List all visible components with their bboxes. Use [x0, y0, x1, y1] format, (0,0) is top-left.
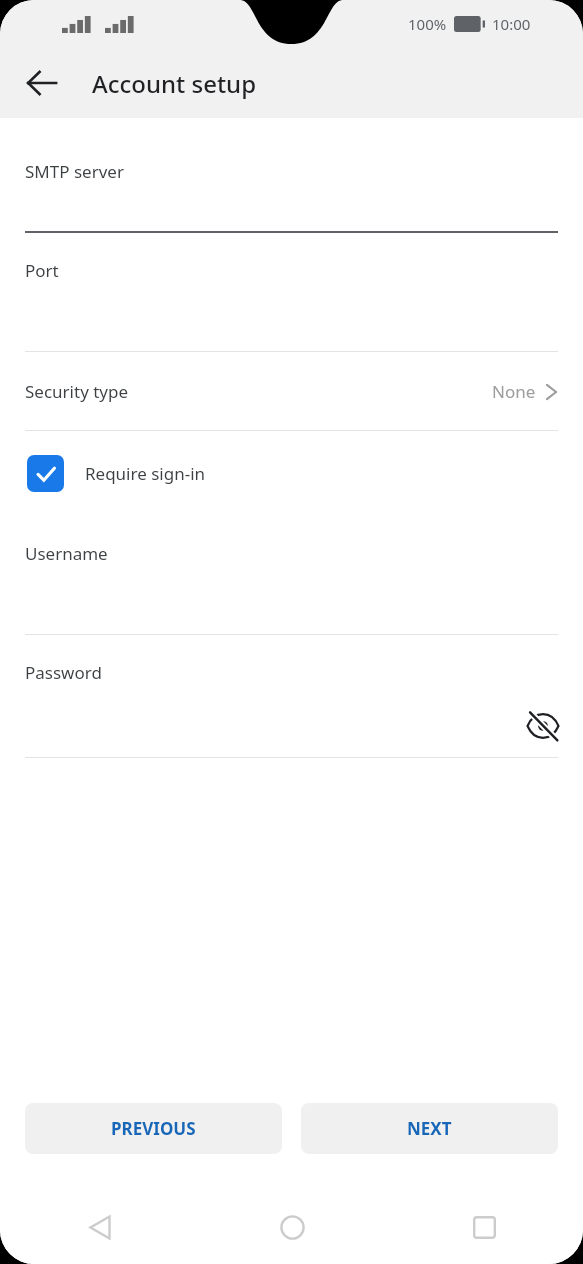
button[interactable]: Show password: [519, 702, 567, 750]
staticText: Account setup: [92, 67, 257, 100]
staticText: SMTP server: [25, 160, 124, 183]
staticText: PREVIOUS: [111, 1117, 196, 1140]
staticText: None: [492, 380, 536, 403]
staticText: Security type: [25, 380, 129, 403]
button[interactable]: Port: [0, 233, 583, 352]
staticText: 10:00: [492, 14, 531, 34]
button[interactable]: Home: [266, 1201, 318, 1253]
button[interactable]: Back: [74, 1201, 126, 1253]
button[interactable]: SMTP server: [0, 136, 583, 233]
staticText: NEXT: [407, 1117, 452, 1140]
button[interactable]: PREVIOUS: [25, 1103, 282, 1154]
staticText: 100%: [408, 14, 447, 34]
staticText: Require sign-in: [85, 462, 206, 485]
button[interactable]: Security type: [0, 352, 583, 431]
staticText: Port: [25, 259, 59, 282]
button[interactable]: Recents: [458, 1201, 510, 1253]
button[interactable]: Require sign-in: [0, 431, 583, 516]
button[interactable]: Back: [14, 55, 70, 111]
button[interactable]: Username: [0, 516, 583, 635]
button[interactable]: Password: [0, 635, 583, 758]
button[interactable]: NEXT: [301, 1103, 558, 1154]
staticText: Username: [25, 542, 108, 565]
staticText: Password: [25, 661, 102, 684]
